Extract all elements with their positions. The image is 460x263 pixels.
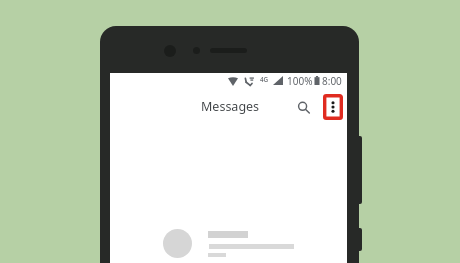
button[interactable]: Search [292,96,316,120]
staticText: 100% [287,74,313,88]
staticText: Messages [201,98,260,115]
button[interactable]: More options [323,94,343,120]
staticText: 8:00 [322,74,342,88]
staticText: 4G [260,75,269,84]
button[interactable]: Conversation [110,220,347,263]
